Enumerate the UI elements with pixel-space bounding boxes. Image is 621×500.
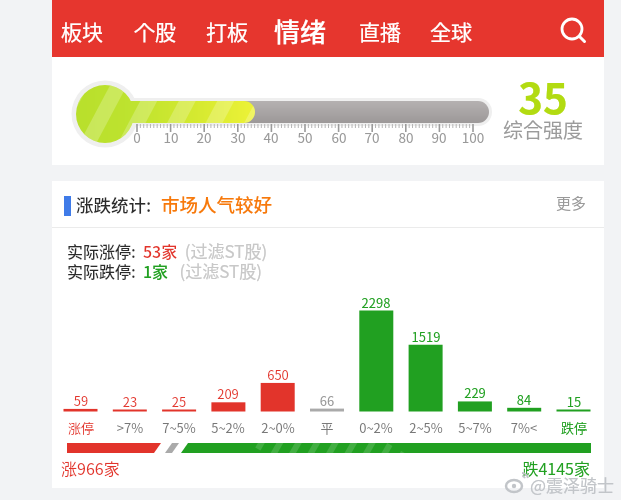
staticText: 40 [251,127,291,147]
staticText: 涨跌统计: [76,192,152,217]
staticText: 跌停 [547,418,601,437]
staticText: 实际跌停: 1家 (过滤ST股) [67,258,262,283]
staticText: 80 [386,127,426,147]
staticText: @震泽骑士 [530,472,615,497]
staticText: 直播 [359,16,401,46]
staticText: 打板 [206,16,248,46]
staticText: 实际涨停: 53家 (过滤ST股) [67,238,268,263]
staticText: 全球 [430,16,472,46]
button[interactable]: 全球 [430,16,472,46]
staticText: 650 [253,365,303,384]
staticText: 5~2% [201,418,255,437]
staticText: 60 [319,127,359,147]
button[interactable]: 打板 [206,16,248,46]
staticText: 20 [184,127,224,147]
staticText: 2298 [351,293,401,312]
staticText: 229 [450,383,500,402]
staticText: 7~5% [152,418,206,437]
staticText: 板块 [61,16,103,46]
button[interactable] [52,181,604,488]
staticText: 平 [300,418,354,437]
staticText: 0~2% [349,418,403,437]
staticText: 7%< [497,418,551,437]
staticText: 个股 [134,16,176,46]
button[interactable]: 情绪 [274,12,327,50]
staticText: 70 [352,127,392,147]
staticText: 跌4145家 [490,456,590,479]
staticText: 35 [503,65,583,126]
staticText: 2~5% [399,418,453,437]
staticText: 5~7% [448,418,502,437]
staticText: 50 [285,127,325,147]
staticText: 15 [549,392,599,411]
staticText: 84 [499,390,549,409]
staticText: 209 [203,384,253,403]
staticText: 涨停 [54,418,108,437]
staticText: 2~0% [251,418,305,437]
staticText: 66 [302,391,352,410]
button[interactable]: 板块 [61,16,103,46]
staticText: 25 [154,392,204,411]
staticText: >7% [103,418,157,437]
staticText: 30 [218,127,258,147]
button[interactable]: 涨跌统计: [76,191,273,218]
button[interactable]: 更多 [556,192,587,214]
staticText: 59 [56,391,106,410]
button[interactable]: 个股 [134,16,176,46]
staticText: 1519 [401,327,451,346]
staticText: 90 [419,127,459,147]
staticText: 情绪 [274,12,327,50]
staticText: 市场人气较好 [161,191,273,218]
button[interactable]: 直播 [359,16,401,46]
button[interactable] [560,15,588,43]
staticText: 100 [453,127,493,147]
staticText: 涨966家 [61,456,120,479]
staticText: 10 [151,127,191,147]
staticText: 综合强度 [498,115,588,144]
staticText: 23 [105,392,155,411]
staticText: 0 [117,127,157,147]
